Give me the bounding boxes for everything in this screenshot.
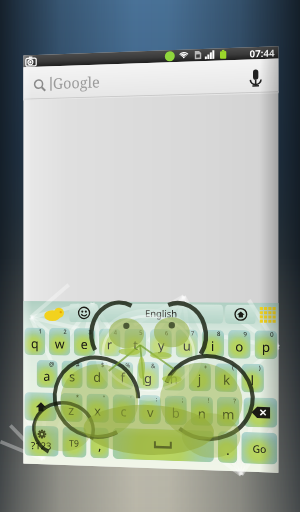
button[interactable]: @ (37, 360, 58, 388)
staticText: 8 (217, 330, 221, 338)
button[interactable]: 2 (49, 328, 70, 356)
staticText: @ (49, 360, 55, 368)
staticText: n (198, 404, 207, 423)
button[interactable]: - (163, 362, 185, 391)
staticText: z (68, 401, 75, 419)
staticText: x (94, 402, 101, 420)
button[interactable]: T9 (62, 426, 86, 458)
staticText: " (103, 394, 106, 402)
button[interactable]: 4 (99, 328, 120, 356)
staticText: 4 (114, 329, 118, 337)
staticText: ) (259, 364, 261, 372)
button[interactable]: ! (191, 396, 213, 426)
staticText: . (226, 440, 230, 459)
button[interactable]: English (100, 304, 223, 324)
staticText: ; (182, 396, 184, 404)
staticText: r (107, 335, 113, 353)
staticText: ? (233, 397, 236, 405)
button[interactable]: 1 (24, 327, 45, 355)
staticText: 9 (243, 330, 247, 338)
button[interactable]: " (86, 393, 109, 423)
staticText: c (120, 402, 127, 420)
button[interactable]: + (189, 363, 211, 391)
staticText: a (43, 367, 51, 385)
staticText: ! (208, 396, 210, 404)
button[interactable]: ? (217, 397, 239, 427)
staticText: g (144, 369, 152, 387)
button[interactable] (113, 428, 214, 462)
button[interactable]: % (112, 361, 133, 390)
staticText: 7 (191, 329, 195, 338)
staticText: f (120, 368, 125, 386)
staticText: v (147, 403, 154, 421)
staticText: ( (232, 363, 234, 372)
button[interactable]: , (90, 427, 109, 459)
staticText: : (156, 395, 158, 403)
staticText: % (125, 362, 130, 370)
staticText: ?123 (31, 438, 52, 453)
staticText: English (145, 307, 178, 320)
staticText: 3 (88, 328, 92, 336)
staticText: w (55, 335, 65, 353)
staticText: d (93, 368, 101, 386)
button[interactable]: Google (23, 58, 278, 101)
button[interactable]: & (137, 362, 159, 390)
button[interactable]: 9 (228, 330, 250, 359)
button[interactable] (225, 305, 256, 324)
button[interactable]: ' (113, 394, 135, 424)
staticText: # (76, 361, 80, 369)
staticText: u (183, 336, 192, 355)
staticText: $ (101, 361, 105, 369)
button[interactable]: 5 (124, 329, 146, 357)
staticText: 5 (139, 329, 143, 337)
button[interactable]: ; (165, 395, 187, 425)
button[interactable]: 3 (74, 328, 95, 356)
staticText: + (204, 363, 208, 371)
button[interactable]: ( (215, 363, 237, 392)
staticText: b (172, 404, 180, 422)
button[interactable]: * (60, 393, 83, 422)
button[interactable]: Go (241, 432, 277, 465)
button[interactable]: ?123 (24, 425, 59, 457)
staticText: l (251, 371, 255, 389)
button[interactable]: 7 (176, 329, 198, 358)
button[interactable] (69, 303, 98, 322)
staticText: i (211, 337, 215, 355)
staticText: 2 (63, 328, 67, 336)
staticText: y (158, 336, 165, 354)
staticText: h (170, 369, 179, 388)
staticText: , (98, 436, 102, 454)
button[interactable]: . (218, 431, 237, 463)
button[interactable]: 8 (202, 330, 224, 358)
staticText: m (222, 405, 235, 423)
staticText: k (223, 370, 230, 389)
staticText: 07:44 (249, 46, 275, 59)
staticText: q (31, 334, 39, 352)
staticText: s (69, 367, 76, 385)
button[interactable] (243, 397, 277, 428)
staticText: o (235, 337, 243, 356)
button[interactable]: Apps (259, 306, 276, 323)
staticText: j (198, 370, 202, 388)
staticText: e (81, 335, 88, 353)
staticText: - (180, 363, 182, 371)
staticText: Google (53, 72, 100, 93)
button[interactable]: $ (86, 361, 108, 389)
button[interactable]: 6 (150, 329, 172, 357)
staticText: 6 (165, 329, 169, 337)
staticText: * (76, 393, 80, 401)
staticText: ' (130, 395, 132, 403)
button[interactable]: : (139, 395, 161, 424)
staticText: t (133, 336, 138, 354)
staticText: p (262, 337, 270, 356)
button[interactable]: ) (241, 364, 264, 393)
staticText: 1 (39, 328, 42, 335)
staticText: 0 (270, 330, 274, 339)
staticText: T9 (69, 436, 80, 449)
button[interactable] (24, 392, 57, 421)
button[interactable]: # (61, 360, 83, 388)
button[interactable]: 0 (255, 330, 277, 359)
staticText: & (151, 362, 156, 370)
staticText: Go (253, 441, 267, 456)
